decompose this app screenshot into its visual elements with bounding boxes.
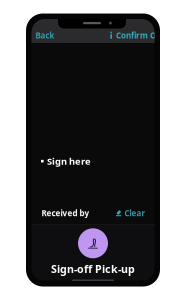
button[interactable]: Back xyxy=(31,27,58,44)
staticText: Clear xyxy=(124,208,144,218)
button[interactable]: Confirm Ord xyxy=(109,27,164,44)
button[interactable]: Sign-off Pick-up xyxy=(51,228,135,276)
button[interactable]: Clear xyxy=(116,205,144,221)
staticText: Received by xyxy=(41,208,89,218)
staticText: Sign-off Pick-up xyxy=(51,262,135,276)
staticText: Sign here xyxy=(47,155,91,167)
staticText: Back xyxy=(35,30,54,41)
staticText: Confirm Ord xyxy=(116,30,164,41)
